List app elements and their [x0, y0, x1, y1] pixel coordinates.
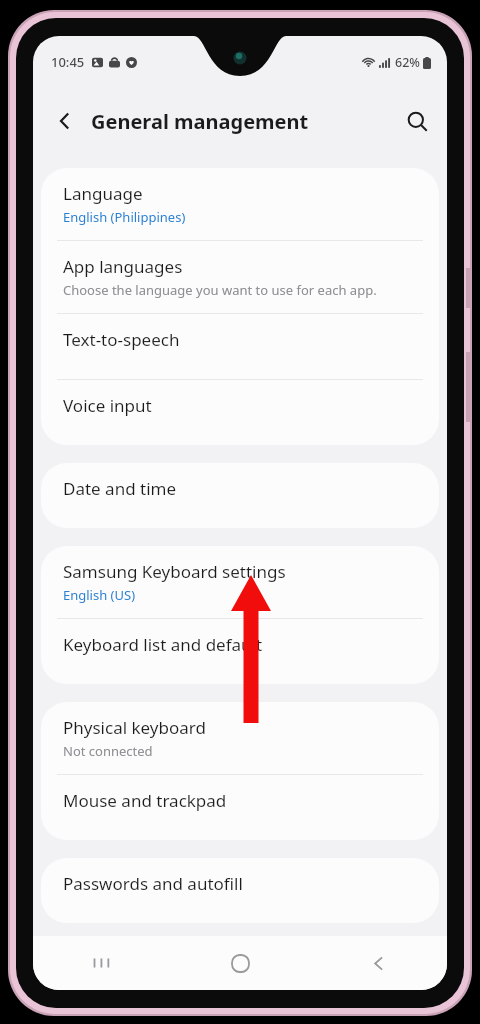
- button[interactable]: Back: [43, 99, 87, 143]
- button[interactable]: Voice input: [41, 380, 439, 445]
- button[interactable]: Home: [171, 936, 309, 990]
- staticText: Physical keyboard: [63, 716, 206, 739]
- button[interactable]: Text-to-speech: [41, 314, 439, 379]
- button[interactable]: Date and time: [41, 463, 439, 528]
- button[interactable]: Back: [309, 936, 447, 990]
- staticText: Not connected: [63, 742, 153, 760]
- button[interactable]: Recents: [33, 936, 171, 990]
- staticText: Date and time: [63, 477, 177, 500]
- staticText: Passwords and autofill: [63, 872, 243, 895]
- button[interactable]: App languages: [41, 241, 439, 313]
- staticText: Voice input: [63, 394, 152, 417]
- staticText: 62%: [395, 54, 420, 71]
- staticText: Text-to-speech: [63, 328, 180, 351]
- staticText: General management: [91, 108, 309, 135]
- button[interactable]: Search: [395, 99, 439, 143]
- other: Annotation arrow: [228, 575, 274, 723]
- button[interactable]: Mouse and trackpad: [41, 775, 439, 840]
- staticText: Language: [63, 182, 143, 205]
- button[interactable]: Keyboard list and default: [41, 619, 439, 684]
- staticText: Mouse and trackpad: [63, 789, 227, 812]
- staticText: English (US): [63, 586, 136, 604]
- staticText: 10:45: [51, 53, 85, 71]
- button[interactable]: Physical keyboard: [41, 702, 439, 774]
- staticText: Keyboard list and default: [63, 633, 263, 656]
- staticText: App languages: [63, 255, 183, 278]
- staticText: English (Philippines): [63, 208, 186, 226]
- button[interactable]: Samsung Keyboard settings: [41, 546, 439, 618]
- button[interactable]: Passwords and autofill: [41, 858, 439, 923]
- button[interactable]: Language: [41, 168, 439, 240]
- staticText: Samsung Keyboard settings: [63, 560, 286, 583]
- staticText: Choose the language you want to use for …: [63, 281, 377, 299]
